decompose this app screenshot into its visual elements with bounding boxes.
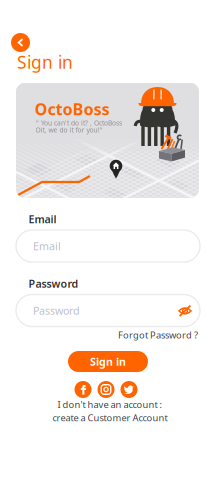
button[interactable]: Forgot Password ? xyxy=(118,329,198,341)
staticText: Oit, we do it for you!" xyxy=(35,126,102,134)
button[interactable]: Back xyxy=(11,33,30,52)
staticText: Email xyxy=(33,239,61,253)
staticText: create a Customer Account xyxy=(52,411,167,424)
staticText: Password xyxy=(33,303,80,318)
button[interactable]: Instagram xyxy=(97,381,114,398)
button[interactable]: Twitter xyxy=(120,381,137,398)
button[interactable]: Facebook xyxy=(74,381,91,398)
staticText: OctoBoss xyxy=(34,98,109,120)
staticText: Email xyxy=(28,212,56,226)
staticText: I don't have an account : xyxy=(57,398,162,410)
staticText: Password xyxy=(28,276,78,291)
staticText: Sign in xyxy=(90,354,126,369)
staticText: " You can't do it? , OctoBoss xyxy=(36,119,122,127)
staticText: Forgot Password ? xyxy=(118,329,198,341)
button[interactable]: Show password xyxy=(178,303,192,317)
button[interactable]: I don't have an account : xyxy=(52,398,167,424)
button[interactable]: Sign in xyxy=(68,351,148,372)
staticText: Sign in xyxy=(17,50,73,73)
